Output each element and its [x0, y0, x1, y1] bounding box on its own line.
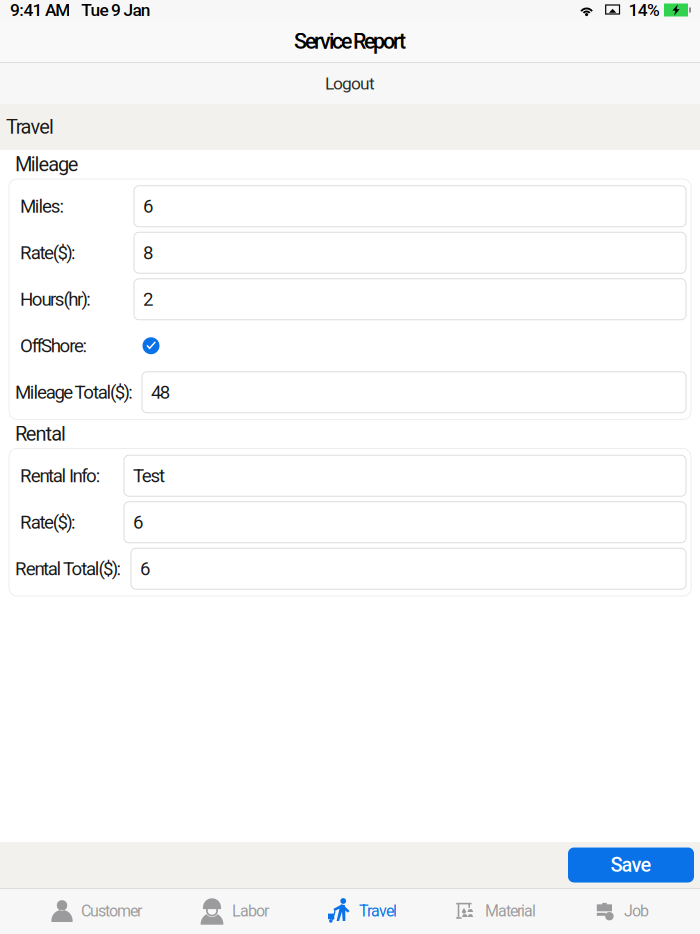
staticText: 6: [133, 511, 143, 533]
button[interactable]: Material: [451, 888, 540, 934]
staticText: OffShore:: [20, 335, 88, 357]
staticText: Rental Total($):: [15, 558, 121, 580]
staticText: 14%: [629, 0, 660, 20]
staticText: 9:41 AM: [10, 0, 70, 20]
button[interactable]: Travel: [323, 888, 401, 934]
staticText: Customer: [81, 902, 142, 920]
staticText: Save: [610, 853, 651, 877]
staticText: Miles:: [20, 195, 64, 217]
button[interactable]: OffShore checkbox, checked: [134, 330, 168, 362]
staticText: Rate($):: [20, 511, 76, 533]
staticText: 2: [143, 288, 153, 310]
staticText: Mileage: [15, 153, 79, 176]
staticText: Job: [624, 902, 649, 920]
button[interactable]: Logout: [275, 65, 425, 101]
button[interactable]: Customer: [47, 888, 146, 934]
staticText: Hours(hr):: [20, 288, 91, 310]
staticText: Material: [485, 902, 536, 920]
staticText: Tue 9 Jan: [81, 0, 151, 20]
staticText: Test: [133, 465, 165, 487]
staticText: Rate($):: [20, 242, 76, 264]
button[interactable]: Job: [590, 888, 653, 934]
staticText: Mileage Total($):: [15, 381, 133, 403]
button[interactable]: Save: [568, 847, 694, 882]
staticText: Rental Info:: [20, 465, 101, 487]
staticText: Travel: [359, 902, 397, 920]
staticText: 8: [143, 242, 153, 264]
staticText: Travel: [6, 115, 54, 139]
button[interactable]: Labor: [196, 888, 273, 934]
staticText: 48: [151, 381, 170, 403]
staticText: 6: [140, 558, 150, 580]
staticText: 6: [143, 195, 153, 217]
staticText: Service Report: [294, 29, 406, 54]
staticText: Logout: [325, 73, 375, 94]
staticText: Rental: [15, 422, 66, 446]
staticText: Labor: [232, 902, 269, 920]
